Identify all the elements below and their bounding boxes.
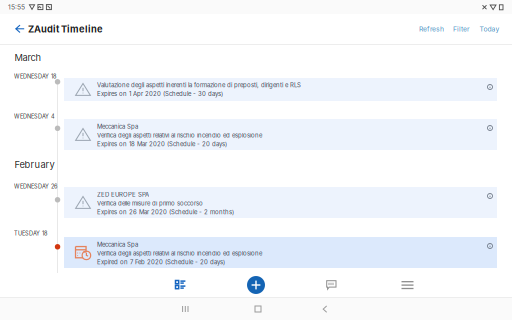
staticText: Expires on 26 Mar 2020 (Schedule - 2 mon… xyxy=(97,208,234,216)
staticText: Verifica degli aspetti relativi al risch… xyxy=(97,132,262,139)
staticText: Verifica delle misure di primo soccorso xyxy=(97,200,203,207)
button[interactable]: Messages xyxy=(313,273,349,297)
button[interactable]: Home xyxy=(244,298,272,320)
staticText: ZAudit Timeline xyxy=(28,23,103,35)
staticText: Filter xyxy=(453,25,470,33)
staticText: 15:55 xyxy=(8,3,25,11)
button[interactable]: Refresh xyxy=(413,14,450,44)
button[interactable]: ZED EUROPE SPA xyxy=(64,187,497,218)
staticText: WEDNESDAY 18 xyxy=(14,73,56,80)
staticText: March xyxy=(14,52,41,63)
staticText: Meccanica Spa xyxy=(97,123,138,130)
staticText: Refresh xyxy=(419,25,444,33)
button[interactable]: ZAudit Timeline xyxy=(28,14,103,44)
button[interactable]: Today xyxy=(473,14,505,44)
staticText: Meccanica Spa xyxy=(97,241,138,248)
button[interactable]: Meccanica Spa xyxy=(64,119,497,150)
staticText: Expired on 7 Feb 2020 (Schedule - 20 day… xyxy=(97,258,225,266)
staticText: TUESDAY 18 xyxy=(14,230,47,237)
staticText: Verifica degli aspetti relativi al risch… xyxy=(97,250,262,257)
staticText: Valutazione degli aspetti inerenti la fo… xyxy=(97,81,301,89)
button[interactable]: Valutazione degli aspetti inerenti la fo… xyxy=(64,78,497,101)
staticText: February xyxy=(14,159,54,170)
button[interactable]: Menu xyxy=(389,273,425,297)
button[interactable]: Add xyxy=(238,273,274,297)
button[interactable]: Recents xyxy=(171,298,199,320)
staticText: Expires on 1 Apr 2020 (Schedule - 30 day… xyxy=(97,90,223,98)
staticText: WEDNESDAY 26 xyxy=(14,183,57,190)
button[interactable]: Meccanica Spa xyxy=(64,237,497,268)
button[interactable]: Back xyxy=(311,298,339,320)
staticText: Expires on 18 Mar 2020 (Schedule - 20 da… xyxy=(97,140,227,148)
staticText: WEDNESDAY 4 xyxy=(14,113,55,120)
staticText: Today xyxy=(479,25,499,33)
button[interactable]: Back xyxy=(10,14,30,44)
staticText: ZED EUROPE SPA xyxy=(97,191,149,198)
button[interactable]: Filter xyxy=(447,14,476,44)
button[interactable]: Timeline xyxy=(162,273,198,297)
